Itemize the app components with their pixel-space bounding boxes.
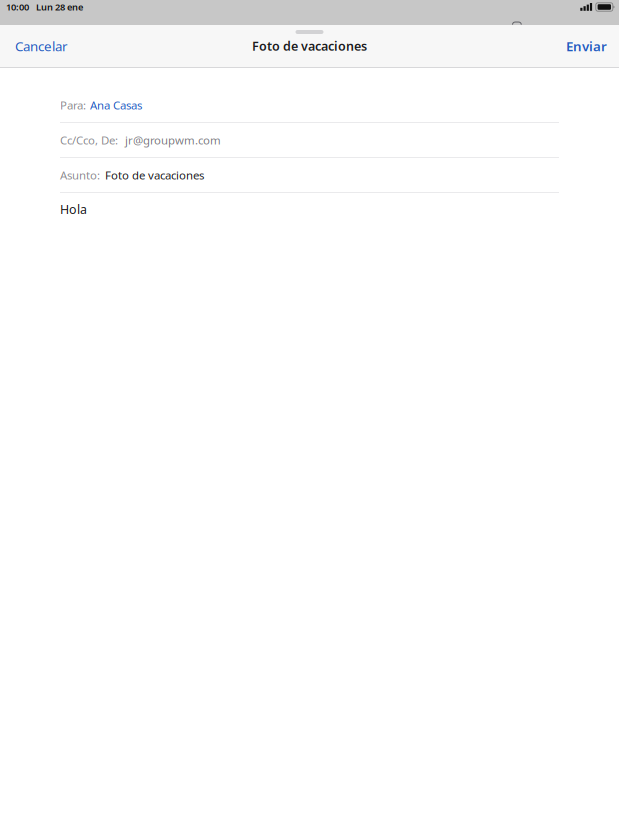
staticText: Para: (60, 97, 86, 112)
staticText: Enviar (566, 37, 607, 55)
staticText: jr@groupwm.com (125, 132, 221, 147)
staticText: Foto de vacaciones (252, 38, 367, 54)
staticText: Cancelar (15, 37, 68, 55)
button[interactable]: Cc/Cco, De: (60, 123, 559, 157)
staticText: Foto de vacaciones (105, 167, 204, 182)
button[interactable]: Cancelar (0, 30, 80, 62)
button[interactable]: Enviar (554, 30, 619, 62)
staticText: 10:00 (6, 1, 29, 13)
staticText: Lun 28 ene (36, 1, 83, 13)
staticText: Hola (60, 201, 87, 217)
button[interactable]: Asunto: (60, 158, 559, 192)
staticText: Cc/Cco, De: (60, 132, 118, 147)
button[interactable]: Para: (60, 88, 559, 122)
staticText: Ana Casas (90, 97, 142, 112)
staticText: Asunto: (60, 167, 100, 182)
